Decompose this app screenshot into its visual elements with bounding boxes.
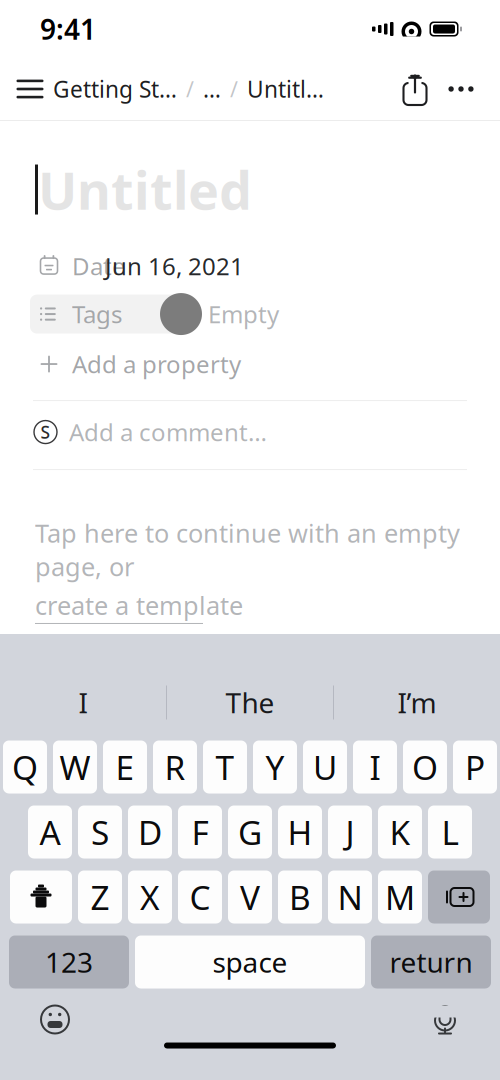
button[interactable]: C: [178, 870, 222, 923]
button[interactable]: I: [353, 740, 397, 793]
button[interactable]: F: [178, 805, 222, 858]
staticText: /: [186, 75, 194, 103]
staticText: L: [441, 810, 458, 854]
button[interactable]: Shift: [10, 870, 72, 923]
staticText: J: [345, 810, 354, 854]
staticText: I: [78, 684, 87, 721]
staticText: W: [59, 745, 90, 789]
button[interactable]: E: [103, 740, 147, 793]
staticText: N: [337, 875, 362, 919]
staticText: C: [189, 875, 210, 919]
staticText: Add a property: [72, 348, 241, 380]
button[interactable]: space: [135, 935, 365, 988]
button[interactable]: P: [453, 740, 497, 793]
button[interactable]: Getting St…: [53, 65, 324, 113]
staticText: P: [465, 745, 485, 789]
staticText: B: [289, 875, 311, 919]
button[interactable]: More options: [438, 65, 484, 113]
button[interactable]: L: [428, 805, 472, 858]
staticText: F: [191, 810, 208, 854]
staticText: Untitled: [38, 155, 252, 224]
button[interactable]: K: [378, 805, 422, 858]
button[interactable]: M: [378, 870, 422, 923]
button[interactable]: J: [328, 805, 372, 858]
button[interactable]: N: [328, 870, 372, 923]
staticText: Tap here to continue with an empty page,…: [35, 516, 460, 583]
button[interactable]: S: [78, 805, 122, 858]
button[interactable]: Add a property: [0, 344, 500, 384]
staticText: Date: [72, 250, 126, 282]
button[interactable]: U: [303, 740, 347, 793]
staticText: G: [238, 810, 262, 854]
button[interactable]: Share: [392, 65, 438, 113]
staticText: T: [215, 745, 234, 789]
staticText: create a template: [35, 588, 243, 622]
staticText: Add a comment…: [69, 416, 267, 448]
button[interactable]: 123: [9, 935, 129, 988]
staticText: Z: [90, 875, 109, 919]
staticText: A: [39, 810, 60, 854]
staticText: 123: [45, 943, 93, 981]
button[interactable]: I: [0, 669, 166, 735]
button[interactable]: W: [53, 740, 97, 793]
staticText: S: [91, 810, 109, 854]
staticText: K: [389, 810, 410, 854]
button[interactable]: Tap here to continue with an empty page,…: [0, 516, 500, 624]
button[interactable]: Menu: [7, 65, 53, 113]
staticText: U: [313, 745, 337, 789]
staticText: /: [230, 75, 238, 103]
staticText: I’m: [397, 684, 436, 721]
staticText: return: [389, 943, 472, 981]
button[interactable]: Z: [78, 870, 122, 923]
staticText: Untitl…: [247, 74, 324, 104]
staticText: H: [287, 810, 312, 854]
staticText: O: [412, 745, 438, 789]
staticText: The: [225, 684, 274, 721]
staticText: E: [115, 745, 134, 789]
button[interactable]: Dictation: [419, 994, 471, 1044]
staticText: M: [385, 875, 415, 919]
button[interactable]: Q: [3, 740, 47, 793]
staticText: S: [40, 420, 50, 443]
button[interactable]: The: [167, 669, 333, 735]
staticText: R: [164, 745, 185, 789]
button[interactable]: G: [228, 805, 272, 858]
button[interactable]: return: [371, 935, 491, 988]
staticText: Tags: [72, 298, 122, 330]
button[interactable]: R: [153, 740, 197, 793]
staticText: space: [212, 943, 287, 981]
button[interactable]: Emoji keyboard: [29, 994, 81, 1044]
staticText: Empty: [208, 298, 279, 330]
staticText: D: [138, 810, 162, 854]
staticText: …: [203, 74, 221, 104]
button[interactable]: D: [128, 805, 172, 858]
button[interactable]: A: [28, 805, 72, 858]
button[interactable]: Delete: [428, 870, 490, 923]
button[interactable]: H: [278, 805, 322, 858]
staticText: X: [140, 875, 160, 919]
button[interactable]: Y: [253, 740, 297, 793]
button[interactable]: O: [403, 740, 447, 793]
button[interactable]: S: [0, 409, 500, 455]
staticText: Q: [12, 745, 38, 789]
staticText: Getting St…: [53, 74, 177, 104]
button[interactable]: V: [228, 870, 272, 923]
button[interactable]: I’m: [334, 669, 500, 735]
button[interactable]: T: [203, 740, 247, 793]
staticText: V: [240, 875, 260, 919]
staticText: I: [369, 745, 380, 789]
staticText: 9:41: [40, 10, 96, 48]
button[interactable]: X: [128, 870, 172, 923]
staticText: Y: [265, 745, 284, 789]
staticText: Jun 16, 2021: [105, 250, 244, 282]
button[interactable]: B: [278, 870, 322, 923]
